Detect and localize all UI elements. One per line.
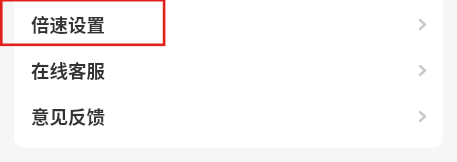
staticText: 意见反馈 [31,103,106,130]
other: Open 在线客服 [419,65,426,76]
button[interactable]: 倍速设置 [14,1,443,47]
other: Open 倍速设置 [419,19,426,30]
button[interactable]: 意见反馈 [14,93,443,139]
staticText: 在线客服 [31,57,106,84]
button[interactable]: 在线客服 [14,47,443,93]
other: Open 意见反馈 [419,111,426,122]
staticText: 倍速设置 [31,11,106,38]
